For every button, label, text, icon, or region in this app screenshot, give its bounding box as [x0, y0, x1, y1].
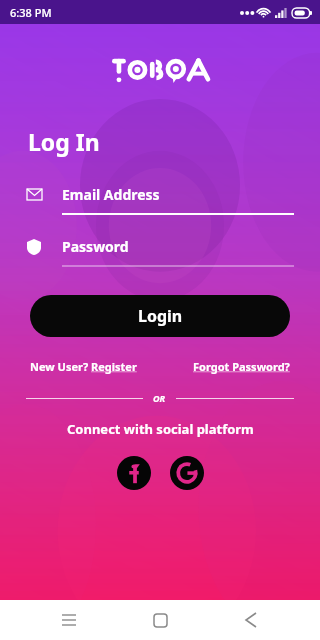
button[interactable]: Back [238, 607, 264, 633]
button[interactable]: Login [30, 295, 290, 337]
button[interactable]: Password [26, 237, 294, 267]
button[interactable]: Forgot Password? [193, 359, 290, 374]
staticText: 6:38 PM [10, 5, 52, 20]
button[interactable]: Sign in with Facebook [117, 456, 151, 490]
staticText: Password [62, 237, 129, 256]
staticText: New User? [30, 359, 91, 374]
staticText: Connect with social platform [67, 420, 254, 438]
button[interactable]: Sign in with Google [170, 456, 204, 490]
staticText: OR [153, 392, 166, 404]
button[interactable]: Home [147, 607, 173, 633]
staticText: Email Address [62, 185, 160, 204]
button[interactable]: New User? [30, 359, 137, 374]
staticText: Log In [28, 126, 100, 157]
button[interactable]: Recent apps [56, 607, 82, 633]
staticText: Register [91, 359, 137, 374]
button[interactable]: Email Address [26, 185, 294, 215]
staticText: Login [138, 305, 183, 327]
